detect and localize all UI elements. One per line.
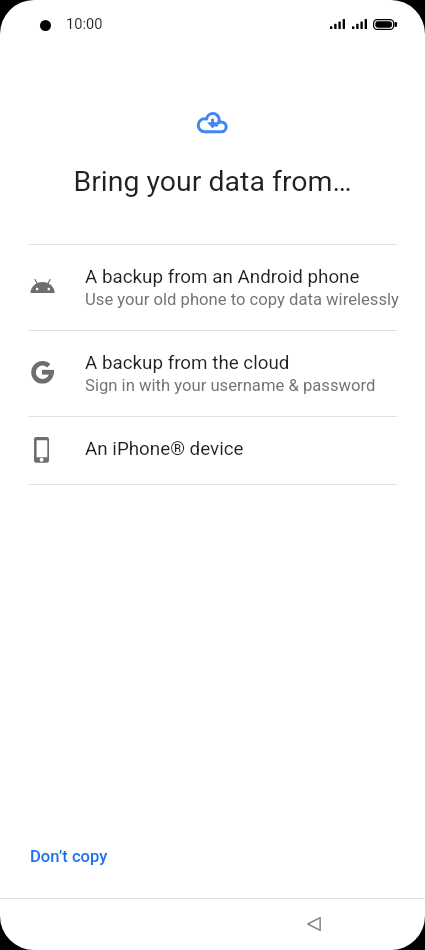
button[interactable]: Don’t copy [20,840,118,873]
staticText: 10:00 [66,15,103,32]
staticText: An iPhone® device [85,438,244,460]
button[interactable]: An iPhone® device [0,416,425,484]
staticText: Don’t copy [30,847,108,866]
staticText: Use your old phone to copy data wireless… [85,290,399,310]
staticText: A backup from the cloud [85,352,290,374]
button[interactable]: Back [290,900,338,948]
button[interactable]: A backup from an Android phone [0,244,425,330]
staticText: Bring your data from… [0,165,425,198]
staticText: Sign in with your username & password [85,376,376,396]
button[interactable]: A backup from the cloud [0,330,425,416]
staticText: A backup from an Android phone [85,266,360,288]
